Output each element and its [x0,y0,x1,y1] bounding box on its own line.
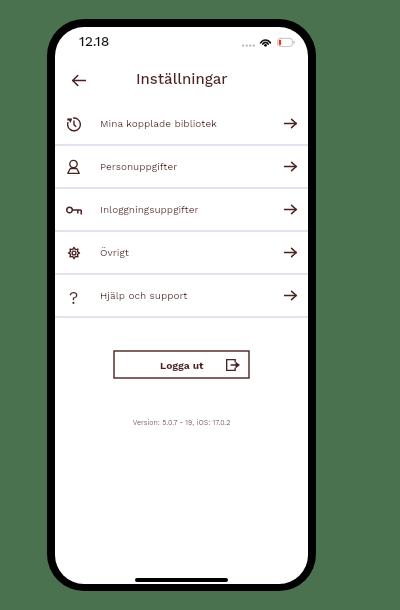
staticText: Mina kopplade bibliotek [100,118,217,130]
button[interactable]: Inloggningsuppgifter [55,189,308,230]
staticText: Inloggningsuppgifter [100,204,199,216]
button[interactable]: Mina kopplade bibliotek [55,103,308,144]
button[interactable]: Övrigt [55,232,308,273]
staticText: Logga ut [160,359,204,371]
staticText: Version: 5.0.7 - 19, iOS: 17.0.2 [55,418,308,426]
button[interactable]: Personuppgifter [55,146,308,187]
button[interactable]: Back [64,65,94,95]
staticText: Personuppgifter [100,161,178,173]
staticText: 12.18 [79,33,110,49]
staticText: Övrigt [100,247,129,259]
button[interactable]: Logga ut [114,351,249,378]
staticText: ? [69,288,79,304]
staticText: Hjälp och support [100,290,188,302]
button[interactable]: ? [55,275,308,316]
staticText: Inställningar [136,70,228,88]
